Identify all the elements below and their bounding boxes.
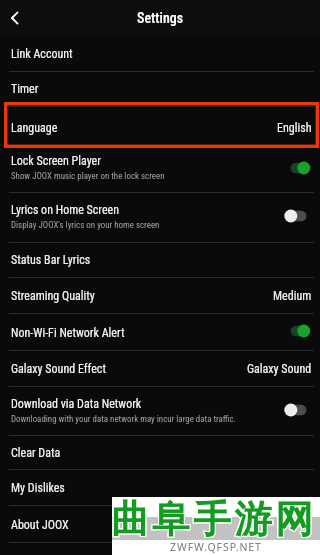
staticText: 曲阜手游网 bbox=[111, 496, 317, 543]
button[interactable]: My Dislikes bbox=[0, 470, 320, 506]
button[interactable]: Download via Data Network bbox=[0, 387, 320, 436]
staticText: 曲阜手游网 bbox=[112, 497, 318, 544]
staticText: Timer bbox=[11, 82, 39, 96]
button[interactable]: Link Account bbox=[0, 35, 320, 72]
staticText: Download via Data Network bbox=[11, 397, 142, 411]
staticText: Clear Data bbox=[11, 446, 61, 460]
button[interactable]: Status Bar Lyrics bbox=[0, 242, 320, 278]
staticText: Display JOOX's lyrics on your home scree… bbox=[11, 220, 160, 230]
staticText: Show JOOX music player on the lock scree… bbox=[11, 171, 165, 181]
button[interactable]: About JOOX bbox=[0, 506, 320, 543]
staticText: 曲阜手游网 bbox=[110, 495, 316, 542]
staticText: 曲阜手游网 bbox=[110, 496, 316, 543]
staticText: Medium bbox=[273, 289, 312, 303]
staticText: Non-Wi-Fi Network Alert bbox=[11, 326, 125, 340]
staticText: Lock Screen Player bbox=[11, 154, 101, 168]
button[interactable]: Language bbox=[0, 107, 320, 148]
staticText: My Dislikes bbox=[11, 481, 65, 495]
staticText: Galaxy Sound bbox=[247, 362, 312, 376]
staticText: 曲阜手游网 bbox=[111, 497, 317, 544]
staticText: Streaming Quality bbox=[11, 289, 95, 303]
button[interactable]: Galaxy Sound Effect bbox=[0, 351, 320, 387]
staticText: 曲阜手游网 bbox=[111, 495, 317, 542]
button[interactable]: Timer bbox=[0, 71, 320, 107]
button[interactable]: Non-Wi-Fi Network Alert bbox=[0, 314, 320, 351]
staticText: English bbox=[277, 121, 312, 135]
button[interactable]: Lyrics on Home Screen bbox=[0, 193, 320, 243]
staticText: ZWFW.QFSP.NET bbox=[170, 540, 262, 554]
staticText: 曲阜手游网 bbox=[112, 495, 318, 542]
button[interactable]: Back bbox=[0, 1, 30, 35]
staticText: Language bbox=[11, 121, 58, 135]
staticText: Galaxy Sound Effect bbox=[11, 362, 106, 376]
button[interactable]: Clear Data bbox=[0, 435, 320, 470]
staticText: Downloading with your data network may i… bbox=[11, 414, 236, 424]
staticText: About JOOX bbox=[11, 518, 69, 532]
staticText: 曲阜手游网 bbox=[112, 496, 318, 543]
staticText: Lyrics on Home Screen bbox=[11, 203, 119, 217]
staticText: Link Account bbox=[11, 47, 73, 61]
button[interactable]: Lock Screen Player bbox=[0, 147, 320, 193]
button[interactable]: Streaming Quality bbox=[0, 278, 320, 314]
staticText: 曲阜手游网 bbox=[110, 497, 316, 544]
staticText: Settings bbox=[137, 10, 184, 26]
staticText: Status Bar Lyrics bbox=[11, 253, 91, 267]
